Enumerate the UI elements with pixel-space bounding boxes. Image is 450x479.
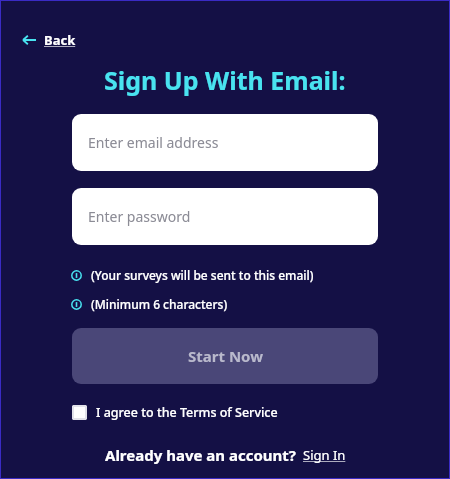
staticText: (Your surveys will be sent to this email…	[91, 267, 314, 283]
staticText: Sign In	[303, 446, 346, 464]
staticText: Sign Up With Email:	[104, 63, 346, 97]
staticText: Back	[44, 31, 76, 49]
staticText: (Minimum 6 characters)	[91, 296, 228, 312]
staticText: Start Now	[188, 346, 263, 366]
button[interactable]: Back	[18, 28, 80, 52]
staticText: Enter password	[88, 207, 191, 226]
staticText: Already have an account?	[105, 445, 296, 465]
staticText: I agree to the Terms of Service	[96, 404, 278, 421]
staticText: Enter email address	[88, 133, 219, 152]
button[interactable]: Sign In	[303, 446, 346, 465]
button[interactable]: Enter password	[72, 188, 378, 245]
button[interactable]: Enter email address	[72, 114, 378, 171]
button[interactable]: I agree to the Terms of Service	[72, 402, 278, 423]
button[interactable]: Start Now	[72, 328, 378, 384]
